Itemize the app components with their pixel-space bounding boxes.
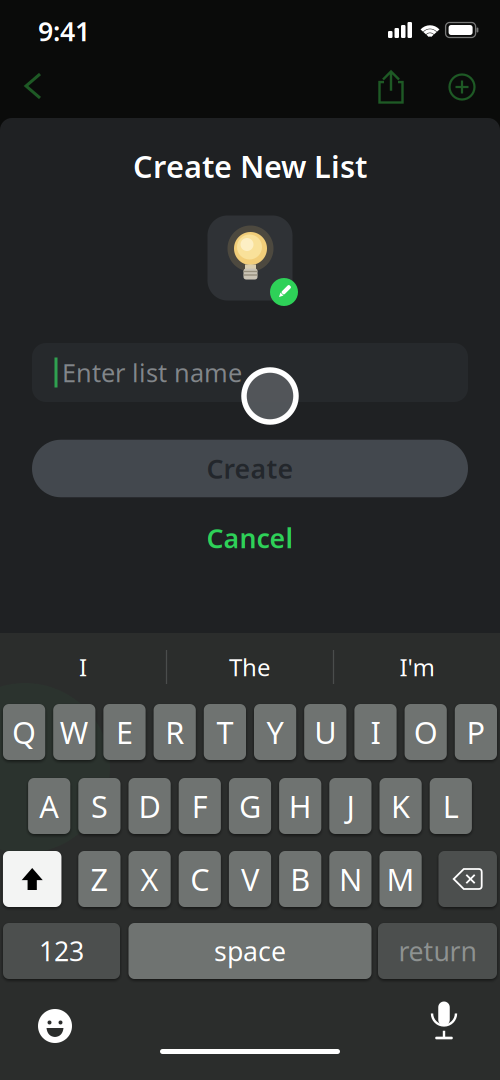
button[interactable]: C [179, 851, 221, 907]
button[interactable]: Cancel [198, 512, 301, 564]
button[interactable]: space [128, 923, 371, 979]
button[interactable]: Create [32, 440, 468, 497]
button[interactable]: Back [16, 64, 50, 108]
button[interactable]: I [354, 704, 397, 760]
button[interactable]: V [229, 851, 271, 907]
staticText: I [79, 651, 87, 683]
staticText: Y [267, 712, 284, 752]
staticText: R [165, 712, 184, 752]
button[interactable]: F [179, 778, 221, 834]
staticText: 123 [39, 933, 84, 969]
staticText: Create [206, 451, 293, 486]
button[interactable]: 123 [3, 923, 120, 979]
button[interactable]: Emoji [30, 1001, 80, 1051]
button[interactable]: Add [441, 66, 482, 107]
staticText: U [314, 712, 336, 752]
staticText: M [387, 859, 415, 899]
button[interactable]: E [103, 704, 146, 760]
staticText: Enter list name [62, 356, 242, 389]
button[interactable]: Enter list name [32, 343, 468, 402]
button[interactable]: G [229, 778, 271, 834]
button[interactable]: O [405, 704, 447, 760]
button[interactable]: N [329, 851, 371, 907]
staticText: H [289, 786, 312, 826]
staticText: T [216, 712, 233, 752]
staticText: G [239, 786, 261, 826]
staticText: A [39, 786, 59, 826]
button[interactable]: A [28, 778, 70, 834]
button[interactable]: Share [372, 64, 409, 109]
staticText: J [346, 786, 354, 826]
staticText: I [370, 712, 380, 752]
staticText: N [339, 859, 362, 899]
staticText: E [116, 712, 133, 752]
button[interactable]: J [329, 778, 371, 834]
staticText: L [443, 786, 459, 826]
button[interactable]: M [379, 851, 422, 907]
button[interactable]: H [279, 778, 321, 834]
staticText: I'm [399, 651, 434, 683]
button[interactable]: T [204, 704, 246, 760]
staticText: Create New List [133, 146, 367, 186]
button[interactable]: Z [78, 851, 120, 907]
button[interactable]: K [379, 778, 422, 834]
button[interactable]: R [154, 704, 196, 760]
staticText: space [214, 933, 286, 969]
staticText: The [229, 651, 271, 683]
button[interactable]: L [430, 778, 472, 834]
button[interactable]: B [279, 851, 321, 907]
button[interactable]: S [78, 778, 120, 834]
button[interactable]: D [128, 778, 171, 834]
staticText: D [139, 786, 161, 826]
staticText: O [414, 712, 438, 752]
staticText: Q [12, 712, 36, 752]
staticText: C [190, 859, 209, 899]
staticText: S [91, 786, 108, 826]
button[interactable]: return [378, 923, 497, 979]
button[interactable]: Shift [3, 851, 61, 907]
button[interactable]: X [128, 851, 171, 907]
button[interactable]: Q [3, 704, 45, 760]
button[interactable]: Delete [438, 851, 497, 907]
button[interactable]: P [455, 704, 497, 760]
button[interactable]: Choose list icon [207, 215, 292, 300]
staticText: K [391, 786, 410, 826]
staticText: Cancel [206, 520, 293, 556]
button[interactable]: Dictate [421, 992, 467, 1047]
button[interactable]: I'm [379, 643, 454, 691]
staticText: W [60, 712, 89, 752]
staticText: Z [90, 859, 108, 899]
button[interactable]: Y [254, 704, 296, 760]
staticText: return [398, 933, 476, 969]
staticText: F [192, 786, 208, 826]
button[interactable]: The [209, 643, 291, 691]
staticText: B [290, 859, 310, 899]
staticText: P [466, 712, 485, 752]
staticText: X [141, 859, 159, 899]
button[interactable]: U [304, 704, 346, 760]
button[interactable]: W [53, 704, 95, 760]
button[interactable]: I [59, 643, 107, 691]
staticText: V [241, 859, 259, 899]
staticText: 9:41 [38, 13, 90, 49]
